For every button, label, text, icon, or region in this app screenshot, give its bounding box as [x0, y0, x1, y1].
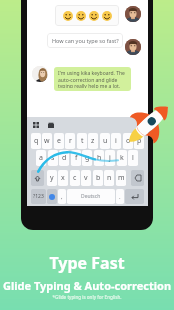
staticText: j	[109, 153, 111, 163]
button[interactable]: Emoji	[47, 189, 57, 204]
staticText: i	[115, 136, 117, 146]
staticText: e	[57, 136, 61, 146]
staticText: d	[62, 153, 67, 163]
button[interactable]: y	[47, 170, 57, 186]
button[interactable]: x	[58, 170, 68, 186]
staticText: l	[132, 153, 134, 163]
staticText: o	[126, 136, 131, 146]
staticText: x	[61, 173, 65, 183]
staticText: Deutsch	[81, 193, 101, 200]
button[interactable]: i	[111, 133, 121, 149]
button[interactable]: q	[31, 133, 41, 149]
staticText: *Glide typing is only for English.	[0, 294, 174, 300]
staticText: a	[39, 153, 43, 163]
button[interactable]: b	[93, 170, 103, 186]
button[interactable]: f	[71, 150, 81, 166]
staticText: z	[91, 136, 95, 146]
button[interactable]: w	[42, 133, 52, 149]
button[interactable]: o	[123, 133, 133, 149]
staticText: b	[96, 173, 101, 183]
staticText: .	[119, 193, 121, 201]
button[interactable]: r	[65, 133, 75, 149]
button[interactable]	[55, 5, 119, 26]
staticText: Glide Typing & Auto-correction	[0, 278, 174, 293]
staticText: How can you type so fast?	[52, 37, 119, 44]
button[interactable]: m	[116, 170, 126, 186]
button[interactable]: Contact photo	[125, 6, 141, 22]
button[interactable]: e	[54, 133, 64, 149]
button[interactable]: Deutsch	[67, 189, 115, 204]
staticText: t	[81, 136, 84, 146]
staticText: g	[85, 153, 90, 163]
button[interactable]: ,	[58, 189, 66, 204]
staticText: m	[118, 173, 125, 183]
staticText: y	[50, 173, 54, 183]
button[interactable]: a	[36, 150, 46, 166]
staticText: n	[107, 173, 112, 183]
button[interactable]: p	[134, 133, 144, 149]
staticText: r	[69, 136, 72, 146]
button[interactable]: Themes	[48, 122, 54, 128]
button[interactable]: u	[100, 133, 110, 149]
button[interactable]: k	[117, 150, 127, 166]
staticText: w	[44, 136, 50, 146]
button[interactable]: t	[77, 133, 87, 149]
button[interactable]: c	[70, 170, 80, 186]
staticText: ,	[61, 193, 63, 201]
button[interactable]: h	[94, 150, 104, 166]
button[interactable]: Enter	[125, 189, 144, 204]
staticText: v	[84, 173, 88, 183]
button[interactable]: ?123	[31, 189, 46, 204]
staticText: k	[120, 153, 124, 163]
button[interactable]: Apps	[33, 122, 39, 128]
button[interactable]: z	[88, 133, 98, 149]
button[interactable]: v	[81, 170, 91, 186]
staticText: f	[75, 153, 78, 163]
button[interactable]: .	[116, 189, 124, 204]
button[interactable]: Backspace	[131, 170, 144, 186]
button[interactable]: Shift	[31, 170, 44, 186]
staticText: u	[103, 136, 108, 146]
staticText: h	[97, 153, 102, 163]
button[interactable]: d	[59, 150, 69, 166]
staticText: Type Fast	[0, 252, 174, 274]
staticText: q	[34, 136, 39, 146]
staticText: s	[51, 153, 55, 163]
button[interactable]: l	[128, 150, 138, 166]
button[interactable]: Your photo	[32, 66, 48, 82]
staticText: c	[73, 173, 77, 183]
staticText: p	[137, 136, 142, 146]
button[interactable]: g	[82, 150, 92, 166]
button[interactable]: Contact photo	[125, 39, 141, 55]
button[interactable]: s	[48, 150, 58, 166]
button[interactable]: n	[104, 170, 114, 186]
staticText: ?123	[33, 193, 44, 200]
staticText: I'm using kika keyboard. The auto-correc…	[58, 70, 127, 88]
button[interactable]: j	[105, 150, 115, 166]
